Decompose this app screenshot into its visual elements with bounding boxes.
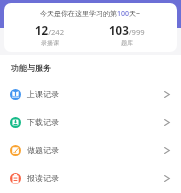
- button[interactable]: 12/242: [11, 23, 88, 47]
- staticText: 报读记录: [27, 173, 60, 183]
- staticText: 12/242: [35, 23, 65, 39]
- staticText: 今天是你在这里学习的第100天~: [40, 9, 141, 19]
- staticText: 题库: [121, 39, 133, 47]
- staticText: 上课记录: [27, 89, 60, 99]
- staticText: 录播课: [41, 39, 59, 47]
- staticText: 做题记录: [27, 145, 60, 155]
- staticText: 103/999: [109, 23, 145, 39]
- staticText: 下载记录: [27, 117, 60, 127]
- button[interactable]: 做题记录: [0, 136, 181, 164]
- staticText: 功能与服务: [11, 63, 51, 73]
- button[interactable]: 103/999: [88, 23, 166, 47]
- button[interactable]: 上课记录: [0, 80, 181, 108]
- button[interactable]: 报读记录: [0, 164, 181, 192]
- button[interactable]: 下载记录: [0, 108, 181, 136]
